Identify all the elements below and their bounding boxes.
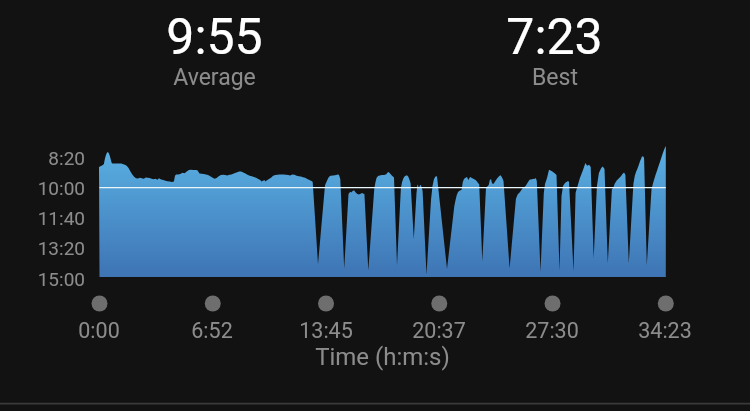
staticText: 13:45 <box>299 318 353 343</box>
staticText: Average <box>173 64 256 91</box>
staticText: 0:00 <box>78 318 120 343</box>
button[interactable]: 9:55 <box>0 0 375 100</box>
staticText: 7:23 <box>506 8 603 67</box>
staticText: 9:55 <box>166 8 263 67</box>
staticText: 10:00 <box>37 177 85 199</box>
staticText: 11:40 <box>37 207 85 229</box>
staticText: Best <box>532 64 578 91</box>
staticText: 34:23 <box>638 318 692 343</box>
staticText: 15:00 <box>37 268 85 290</box>
other: Pace chart <box>0 0 750 411</box>
staticText: Time (h:m:s) <box>315 343 450 371</box>
staticText: 27:30 <box>525 318 579 343</box>
staticText: 6:52 <box>191 318 233 343</box>
staticText: 13:20 <box>37 237 85 259</box>
button[interactable]: 7:23 <box>375 0 750 100</box>
staticText: 8:20 <box>48 147 85 169</box>
staticText: 20:37 <box>412 318 466 343</box>
